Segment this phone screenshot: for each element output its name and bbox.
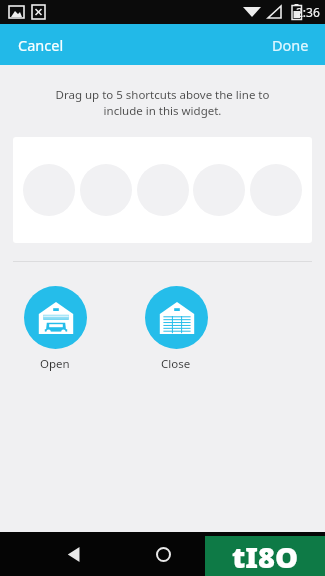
staticText: Open bbox=[40, 356, 70, 372]
button[interactable]: Back bbox=[56, 537, 90, 571]
button[interactable]: Empty shortcut slot bbox=[250, 164, 302, 216]
staticText: tI8O bbox=[232, 537, 299, 576]
button[interactable]: Close bbox=[134, 286, 218, 372]
button[interactable]: Empty shortcut slot bbox=[80, 164, 132, 216]
staticText: Cancel bbox=[18, 35, 64, 55]
button[interactable]: Empty shortcut slot bbox=[137, 164, 189, 216]
button[interactable]: Empty shortcut slot bbox=[23, 164, 75, 216]
button[interactable]: Open bbox=[13, 286, 97, 372]
button[interactable]: Cancel bbox=[0, 24, 82, 65]
staticText: 2:36 bbox=[296, 4, 320, 20]
staticText: Close bbox=[161, 356, 191, 372]
button[interactable]: Done bbox=[256, 24, 325, 65]
staticText: Drag up to 5 shortcuts above the line to… bbox=[0, 87, 325, 118]
staticText: Done bbox=[272, 35, 309, 55]
button[interactable]: Home bbox=[146, 537, 180, 571]
button[interactable]: Empty shortcut slot bbox=[193, 164, 245, 216]
